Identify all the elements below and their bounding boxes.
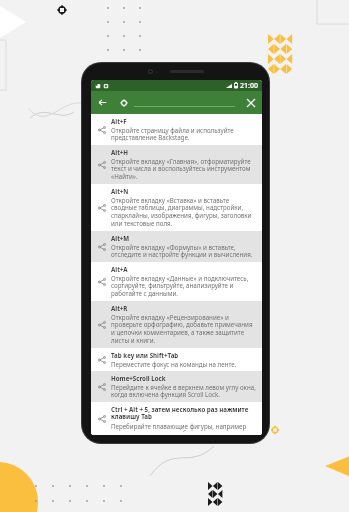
- staticText: Alt+M: [111, 234, 130, 242]
- staticText: Откройте вкладку «Вставка» и вставьте св…: [111, 196, 256, 228]
- button[interactable]: Home+Scroll Lock: [91, 371, 262, 402]
- staticText: Alt+R: [111, 304, 128, 312]
- staticText: Откройте вкладку «Рецензирование» и пров…: [111, 313, 256, 345]
- staticText: Ctrl + Alt + 5, затем несколько раз нажм…: [111, 405, 256, 421]
- button[interactable]: Ctrl + Alt + 5, затем несколько раз нажм…: [91, 402, 262, 435]
- button[interactable]: Alt+H: [91, 145, 262, 184]
- button[interactable]: Alt+R: [91, 301, 262, 348]
- staticText: Alt+F: [111, 117, 127, 125]
- staticText: Alt+N: [111, 187, 129, 195]
- staticText: Откройте страницу файла и используйте пр…: [111, 126, 256, 142]
- staticText: Откройте вкладку «Формулы» и вставьте, о…: [111, 243, 256, 259]
- staticText: 21:00: [240, 81, 258, 91]
- button[interactable]: Close: [239, 91, 262, 114]
- button[interactable]: Alt+F: [91, 114, 262, 145]
- staticText: Tab key или Shift+Tab: [111, 351, 179, 359]
- staticText: Alt+A: [111, 265, 128, 273]
- staticText: Home+Scroll Lock: [111, 374, 166, 382]
- staticText: Перейдите к ячейке в верхнем левом углу …: [111, 383, 256, 399]
- button[interactable]: Search: [114, 91, 134, 114]
- staticText: Откройте вкладку «Данные» и подключитесь…: [111, 274, 256, 298]
- button[interactable]: Tab key или Shift+Tab: [91, 348, 262, 371]
- button[interactable]: Alt+M: [91, 231, 262, 262]
- staticText: Перебирайте плавающие фигуры, например т…: [111, 422, 256, 432]
- staticText: Переместите фокус на команды на ленте.: [111, 360, 237, 368]
- button[interactable]: Back: [91, 91, 114, 114]
- button[interactable]: Alt+N: [91, 184, 262, 231]
- button[interactable]: Alt+A: [91, 262, 262, 301]
- staticText: Alt+H: [111, 148, 129, 156]
- staticText: Откройте вкладку «Главная», отформатируй…: [111, 157, 256, 181]
